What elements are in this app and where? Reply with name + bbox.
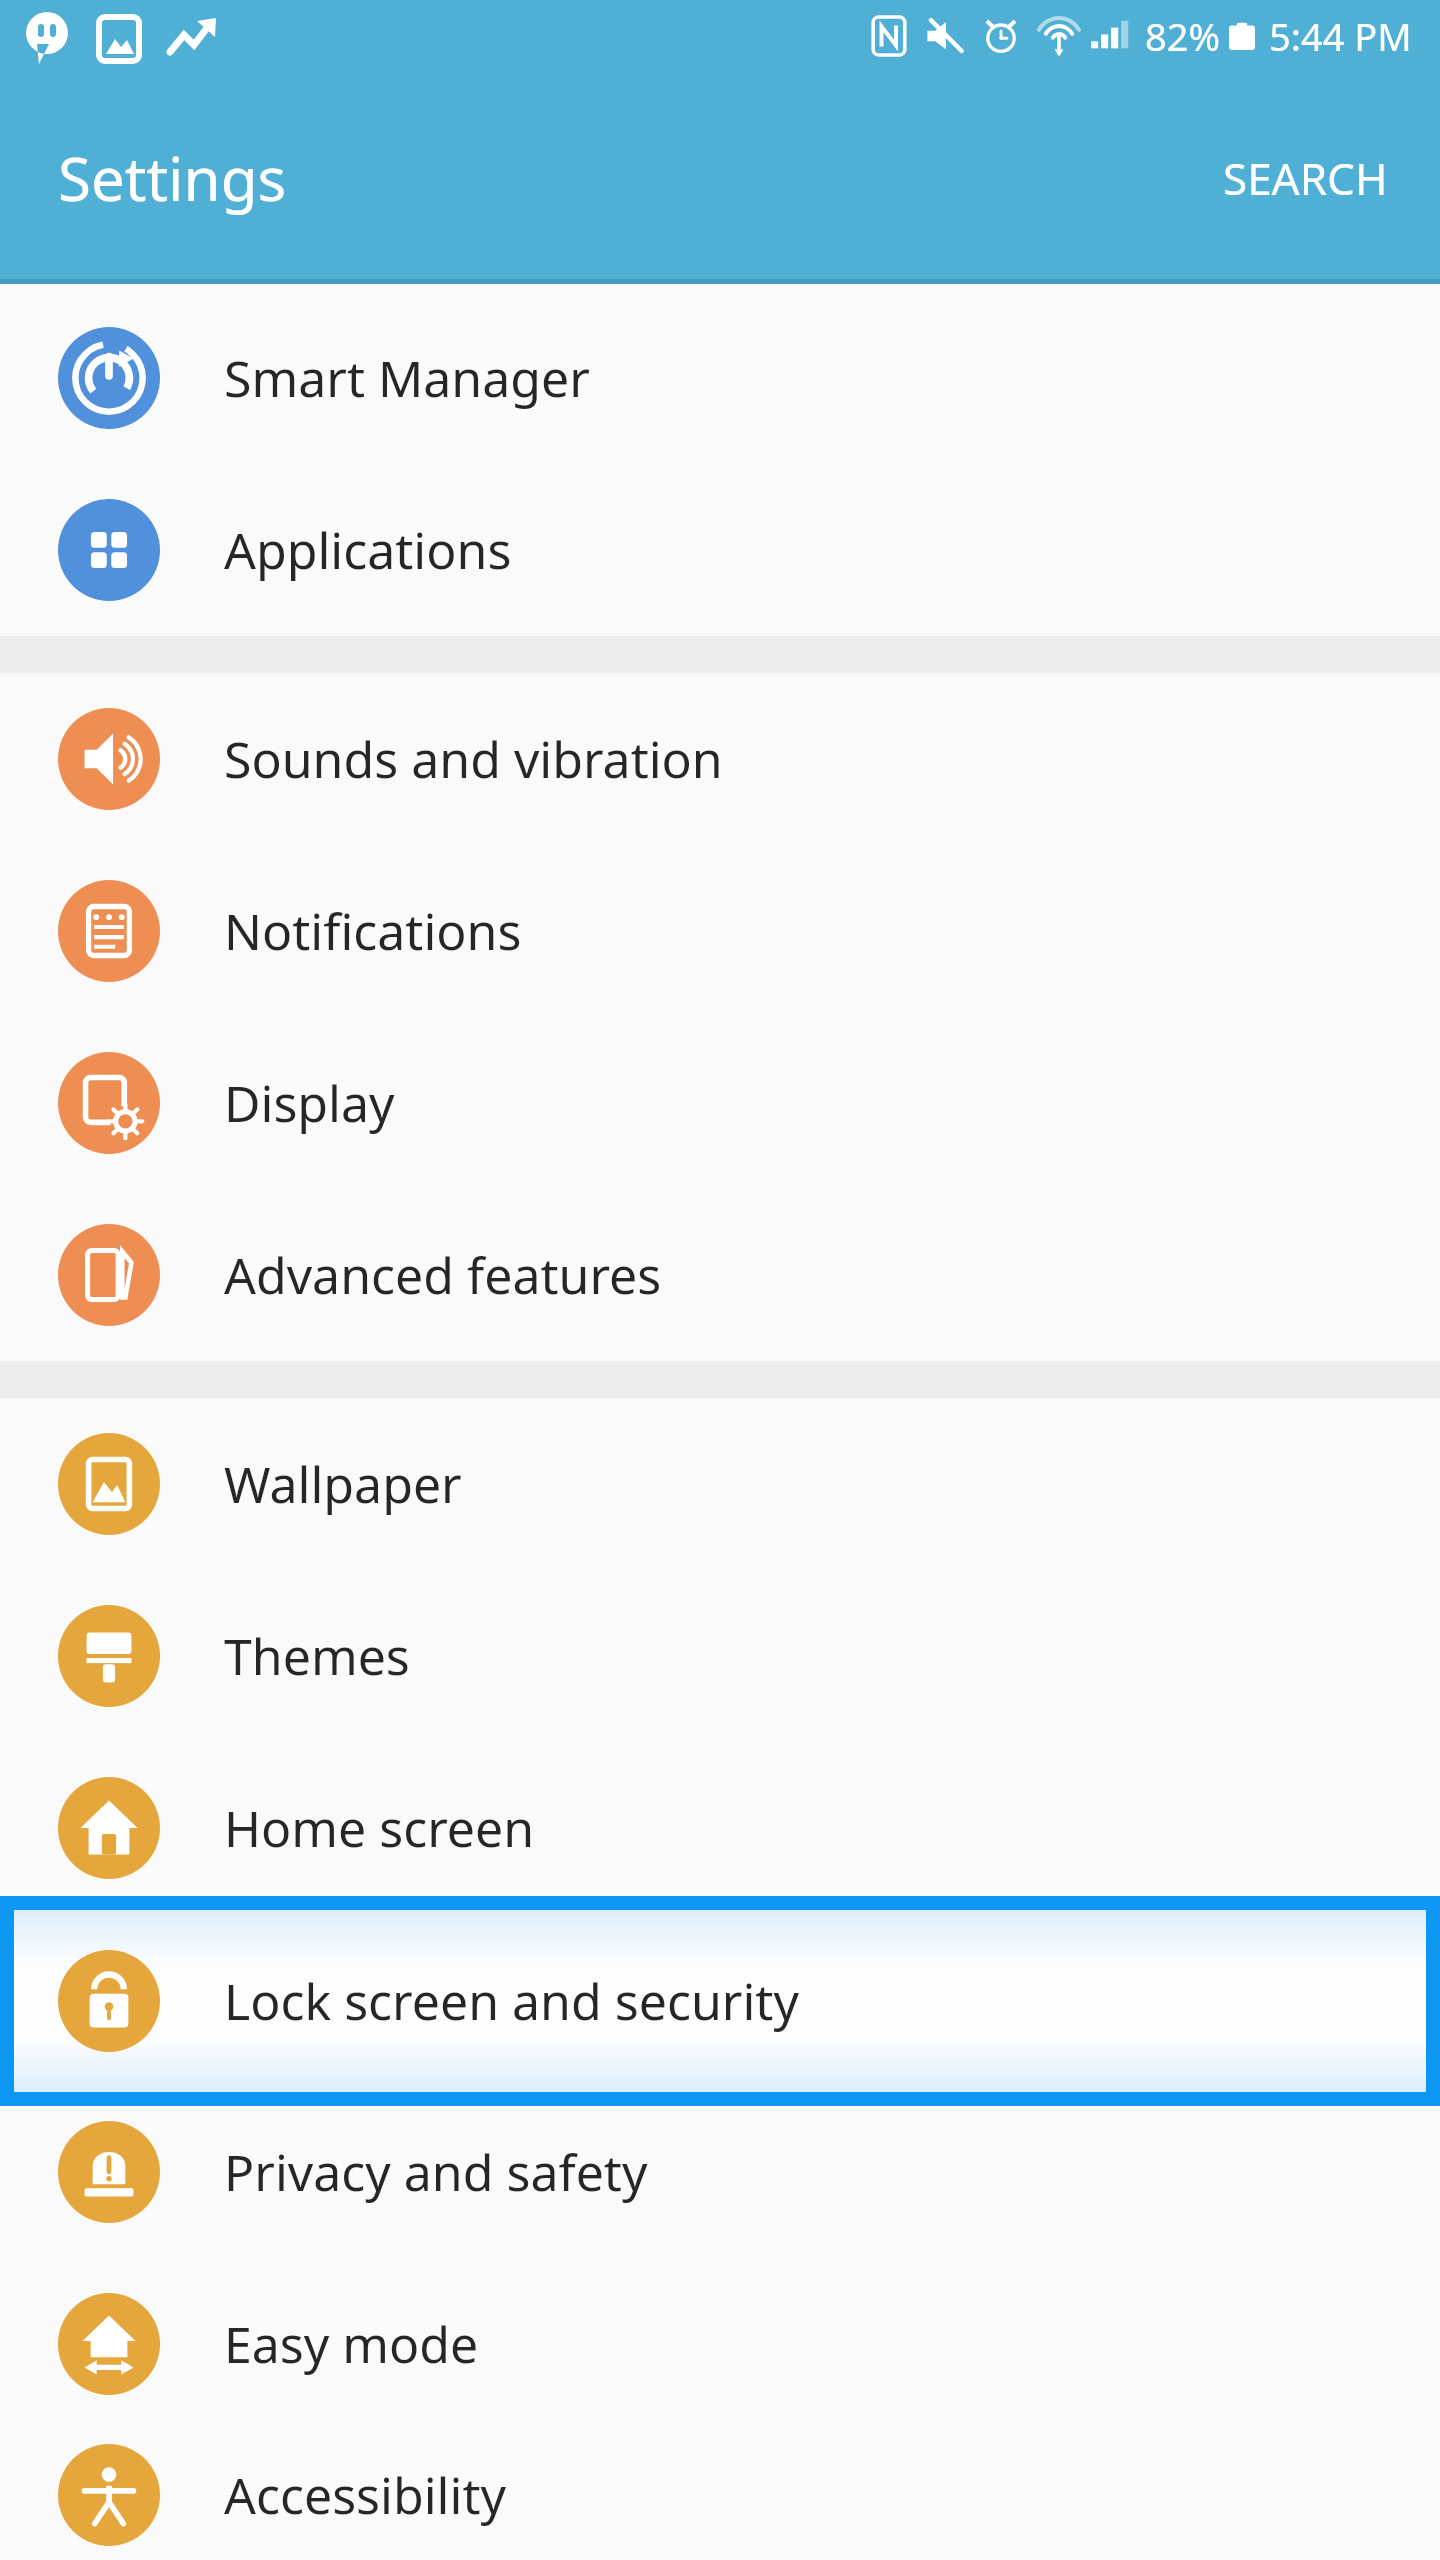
- staticText: Privacy and safety: [224, 2138, 648, 2206]
- button[interactable]: Sounds and vibration: [0, 673, 1440, 845]
- button[interactable]: Accessibility: [0, 2430, 1440, 2560]
- button[interactable]: Display: [0, 1017, 1440, 1189]
- staticText: Themes: [224, 1622, 410, 1690]
- staticText: Display: [224, 1069, 395, 1137]
- staticText: SEARCH: [1223, 148, 1388, 208]
- staticText: Notifications: [224, 897, 522, 965]
- staticText: Wallpaper: [224, 1450, 462, 1518]
- staticText: Lock screen and security: [224, 1967, 799, 2035]
- button[interactable]: Wallpaper: [0, 1398, 1440, 1570]
- staticText: Settings: [58, 137, 287, 219]
- staticText: Easy mode: [224, 2310, 479, 2378]
- button[interactable]: Privacy and safety: [0, 2086, 1440, 2258]
- button[interactable]: Applications: [0, 464, 1440, 636]
- staticText: Accessibility: [224, 2461, 506, 2529]
- staticText: Applications: [224, 516, 512, 584]
- button[interactable]: Themes: [0, 1570, 1440, 1742]
- staticText: 82%: [1145, 10, 1221, 62]
- staticText: Sounds and vibration: [224, 725, 723, 793]
- staticText: Home screen: [224, 1794, 535, 1862]
- staticText: 5:44 PM: [1269, 10, 1412, 62]
- staticText: Lock screen and security: [224, 1966, 799, 2034]
- staticText: Advanced features: [224, 1241, 662, 1309]
- button[interactable]: Lock screen and security: [0, 1914, 1440, 2086]
- button[interactable]: Smart Manager: [0, 292, 1440, 464]
- button[interactable]: Notifications: [0, 845, 1440, 1017]
- button[interactable]: Home screen: [0, 1742, 1440, 1914]
- button[interactable]: Easy mode: [0, 2258, 1440, 2430]
- button[interactable]: SEARCH: [1211, 132, 1400, 224]
- button[interactable]: Advanced features: [0, 1189, 1440, 1361]
- staticText: Smart Manager: [224, 344, 590, 412]
- button[interactable]: Lock screen and security: [14, 1910, 1426, 2092]
